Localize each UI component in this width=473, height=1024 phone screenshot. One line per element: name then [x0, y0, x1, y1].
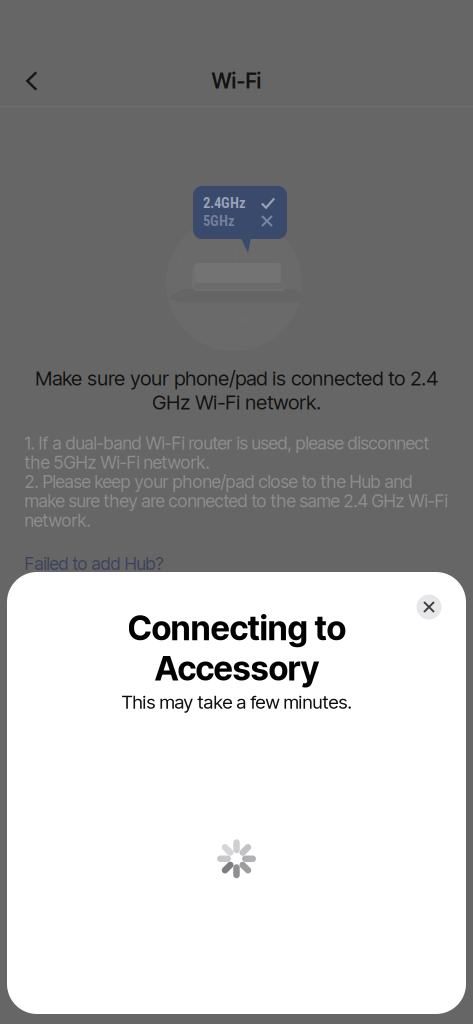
button[interactable]: Failed to add Hub?	[24, 531, 163, 574]
staticText: Failed to add Hub?	[24, 553, 163, 574]
staticText: Make sure your phone/pad is connected to…	[35, 366, 438, 414]
staticText: This may take a few minutes.	[121, 691, 351, 713]
staticText: Wi-Fi	[211, 68, 261, 93]
staticText: Connecting to Accessory	[127, 608, 345, 689]
button[interactable]: Back	[10, 59, 54, 103]
staticText: 5GHz	[203, 212, 235, 230]
staticText: 1. If a dual-band Wi-Fi router is used, …	[24, 432, 447, 531]
staticText: 2.4GHz	[203, 194, 246, 212]
button[interactable]: Close	[407, 585, 451, 629]
